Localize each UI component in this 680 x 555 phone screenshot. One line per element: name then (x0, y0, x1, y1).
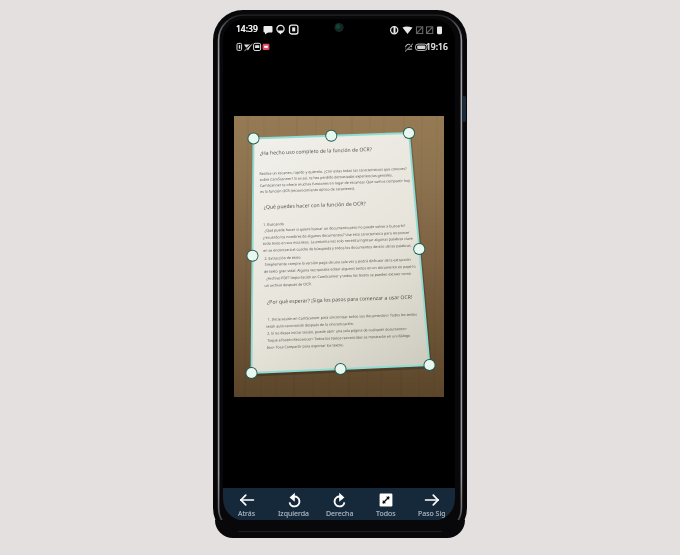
staticText: de texto gran vidal. Alguna vez quisiste… (264, 264, 416, 274)
staticText: ¿Archivo PDF? Importación en CamScanner … (266, 271, 411, 281)
button[interactable]: Rotate left (270, 488, 317, 521)
button[interactable]: Next step (409, 488, 455, 521)
staticText: 14:39 (236, 23, 258, 35)
staticText: ¿Qué puedes hacer con la función de OCR? (264, 200, 366, 211)
staticText: Toque el botón Reconocer> Todos los text… (267, 333, 410, 343)
staticText: ¿Por qué esperar? ¡Siga los pasos para c… (267, 294, 413, 306)
staticText: todo texto en sus escaneos. La próxima v… (263, 236, 413, 246)
staticText: en se encontrará el cuadro de búsqueda y… (263, 243, 412, 253)
staticText: un archivo después de OCR. (264, 281, 312, 288)
staticText: serán auto-reconocido después de la sinc… (266, 321, 355, 329)
staticText: Derecha (326, 509, 354, 519)
button[interactable]: Rotate right (317, 488, 363, 521)
staticText: Izquierda (278, 509, 310, 519)
staticText: 1. Inicie sesión en CamScanner para sinc… (267, 312, 418, 322)
staticText: ¿recuerdo los nombres de algunos documen… (263, 230, 410, 240)
staticText: 1. Buscando (263, 221, 284, 227)
staticText: es la función OCR (reconocimiento óptico… (260, 186, 355, 194)
staticText: Atrás (238, 509, 256, 519)
staticText: Todos (376, 509, 396, 519)
staticText: Simplemente compre la versión paga de un… (265, 257, 412, 267)
button[interactable]: Back (223, 488, 270, 521)
staticText: ¿Ha hecho uso completo de la función de … (260, 146, 373, 157)
staticText: Paso Sig (418, 509, 446, 519)
staticText: CamScanner te ofrece muchas funciones en… (260, 178, 411, 188)
staticText: Realice un escaneo, rapido y quierelo. ¿… (259, 166, 406, 176)
staticText: 19:16 (426, 41, 448, 53)
staticText: 2. Si no desea iniciar sesión, puede abr… (267, 326, 407, 336)
staticText: ¿Qué puede hacer si quiere buscar un doc… (264, 223, 405, 233)
button[interactable]: Select all (363, 488, 409, 521)
staticText: 2. Extracción de texto (264, 255, 302, 261)
staticText: sobre CamScanner? Si es asi, te has perd… (260, 172, 393, 182)
staticText: box> Toca Compartir para exportar los te… (266, 342, 345, 350)
